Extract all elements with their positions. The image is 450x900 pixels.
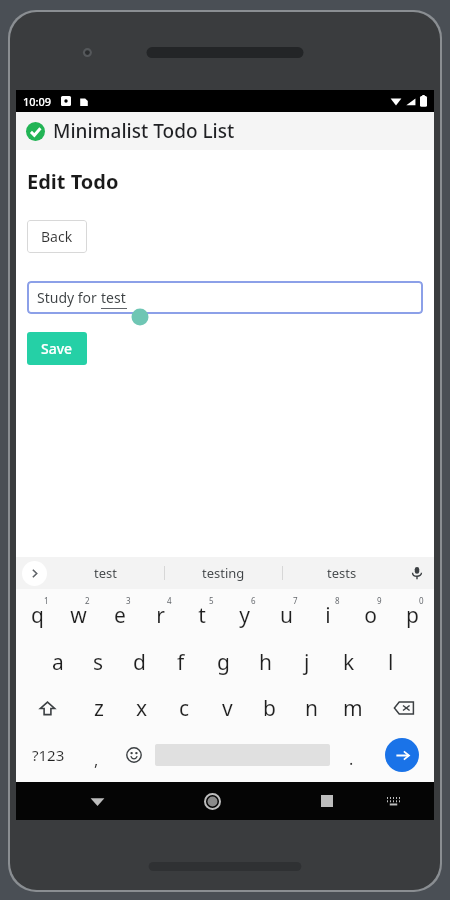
staticText: tests [327, 564, 357, 582]
staticText: 1 [44, 595, 49, 606]
staticText: ?123 [32, 745, 65, 765]
staticText: o [364, 601, 377, 630]
staticText: g [217, 648, 230, 677]
staticText: s [93, 648, 104, 677]
button[interactable]: c [163, 685, 206, 731]
button[interactable]: ?123 [17, 731, 79, 779]
button[interactable]: z [77, 685, 120, 731]
staticText: test [101, 288, 126, 307]
button[interactable]: f [160, 639, 202, 685]
button[interactable]: p [391, 591, 433, 639]
button[interactable]: Back [27, 220, 87, 253]
staticText: f [177, 648, 185, 677]
staticText: 6 [251, 595, 256, 606]
staticText: Study for [37, 288, 101, 307]
staticText: Minimalist Todo List [53, 118, 235, 144]
button[interactable]: b [248, 685, 290, 731]
staticText: p [406, 601, 419, 630]
button[interactable]: x [120, 685, 163, 731]
button[interactable]: Enter [385, 738, 419, 772]
staticText: , [94, 749, 99, 771]
button[interactable]: n [290, 685, 332, 731]
staticText: test [94, 564, 117, 582]
staticText: 3 [126, 595, 131, 606]
button[interactable]: k [328, 639, 370, 685]
staticText: j [304, 648, 310, 677]
staticText: 4 [167, 595, 172, 606]
button[interactable]: Save [27, 332, 87, 365]
staticText: q [31, 601, 44, 630]
staticText: r [156, 601, 165, 630]
staticText: 7 [293, 595, 298, 606]
staticText: u [280, 601, 293, 630]
button[interactable]: g [202, 639, 244, 685]
button[interactable]: a [37, 639, 78, 685]
button[interactable]: , [79, 731, 114, 779]
button[interactable]: m [332, 685, 374, 731]
button[interactable]: e [99, 591, 140, 639]
staticText: 0 [419, 595, 424, 606]
staticText: Edit Todo [27, 168, 119, 195]
button[interactable]: Backspace [374, 685, 433, 731]
button[interactable]: h [244, 639, 286, 685]
staticText: k [343, 648, 355, 677]
button[interactable]: q [17, 591, 58, 639]
staticText: Back [41, 227, 73, 246]
staticText: Save [41, 339, 73, 358]
staticText: 5 [209, 595, 214, 606]
button[interactable]: u [265, 591, 307, 639]
staticText: 9 [377, 595, 382, 606]
button[interactable]: Study for [27, 281, 423, 314]
staticText: 2 [85, 595, 90, 606]
staticText: t [198, 601, 206, 630]
staticText: b [263, 694, 276, 723]
staticText: i [325, 601, 331, 630]
staticText: testing [202, 564, 245, 582]
button[interactable]: Switch keyboard [374, 782, 412, 820]
staticText: c [179, 694, 190, 723]
button[interactable]: y [223, 591, 265, 639]
button[interactable]: tests [283, 557, 400, 589]
button[interactable]: Recent apps [308, 782, 346, 820]
staticText: . [349, 748, 354, 770]
button[interactable]: Emoji [114, 731, 153, 779]
button[interactable]: s [78, 639, 119, 685]
button[interactable]: t [181, 591, 223, 639]
staticText: z [94, 694, 104, 723]
staticText: v [222, 694, 233, 723]
button[interactable]: o [349, 591, 391, 639]
button[interactable]: test [47, 557, 164, 589]
staticText: w [70, 601, 87, 630]
staticText: m [343, 694, 363, 723]
button[interactable]: v [206, 685, 248, 731]
button[interactable]: Voice input [400, 557, 434, 589]
button[interactable]: l [370, 639, 412, 685]
button[interactable]: Expand suggestions [22, 561, 47, 586]
staticText: h [259, 648, 272, 677]
staticText: n [305, 694, 318, 723]
staticText: d [133, 648, 146, 677]
staticText: y [239, 601, 250, 630]
staticText: a [52, 648, 64, 677]
staticText: l [388, 648, 394, 677]
button[interactable]: j [286, 639, 328, 685]
button[interactable]: w [58, 591, 99, 639]
button[interactable]: r [140, 591, 181, 639]
button[interactable]: i [307, 591, 349, 639]
button[interactable]: . [332, 731, 371, 779]
button[interactable]: d [119, 639, 160, 685]
staticText: e [114, 601, 126, 630]
staticText: 8 [335, 595, 340, 606]
button[interactable]: Home [193, 782, 231, 820]
button[interactable]: Shift [17, 685, 77, 731]
button[interactable]: Back [78, 782, 116, 820]
staticText: 10:09 [23, 94, 52, 109]
staticText: x [136, 694, 148, 723]
button[interactable]: testing [165, 557, 282, 589]
